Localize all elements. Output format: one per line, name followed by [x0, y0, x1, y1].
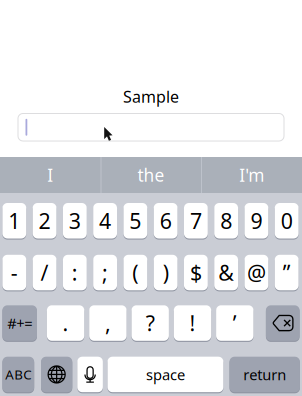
button[interactable]: )	[154, 255, 178, 290]
button[interactable]: 2	[33, 203, 57, 238]
staticText: space	[146, 365, 185, 384]
staticText: )	[163, 258, 169, 287]
button[interactable]: 1	[2, 203, 26, 238]
button[interactable]: /	[33, 255, 57, 290]
staticText: !	[189, 309, 195, 337]
staticText: ”	[283, 258, 291, 287]
button[interactable]: 0	[275, 203, 299, 238]
staticText: 9	[250, 207, 262, 235]
button[interactable]: 9	[244, 203, 268, 238]
button[interactable]: ’	[216, 305, 253, 341]
staticText: 1	[8, 207, 20, 235]
button[interactable]: return	[229, 357, 300, 392]
button[interactable]: 8	[214, 203, 238, 238]
staticText: ?	[146, 309, 155, 337]
staticText: 6	[160, 207, 172, 235]
staticText: .	[63, 309, 69, 337]
staticText: #+=	[7, 313, 32, 333]
staticText: /	[41, 258, 49, 287]
button[interactable]: ;	[93, 255, 117, 290]
staticText: 7	[190, 207, 202, 235]
button[interactable]: (	[123, 255, 147, 290]
button[interactable]: !	[174, 305, 211, 341]
button[interactable]: ”	[275, 255, 299, 290]
button[interactable]: -	[2, 255, 26, 290]
staticText: 2	[39, 207, 51, 235]
button[interactable]: 7	[184, 203, 208, 238]
staticText: -	[11, 258, 18, 287]
button[interactable]: Dictation	[77, 357, 103, 392]
staticText: ’	[233, 309, 237, 337]
button[interactable]: Delete	[266, 305, 300, 341]
button[interactable]: @	[244, 255, 268, 290]
button[interactable]: Next keyboard	[41, 357, 72, 392]
staticText: $	[190, 258, 202, 287]
staticText: Sample	[123, 86, 179, 107]
staticText: I'm	[239, 163, 264, 186]
button[interactable]: $	[184, 255, 208, 290]
button[interactable]: I	[0, 157, 101, 193]
staticText: the	[137, 163, 164, 186]
staticText: 8	[220, 207, 232, 235]
button[interactable]: the	[101, 157, 201, 193]
button[interactable]: space	[107, 357, 223, 392]
button[interactable]: 6	[154, 203, 178, 238]
button[interactable]: &	[214, 255, 238, 290]
button[interactable]: ?	[131, 305, 169, 341]
button[interactable]: 5	[123, 203, 147, 238]
button[interactable]: #+=	[2, 305, 37, 341]
staticText: ,	[105, 309, 111, 337]
staticText: ;	[102, 258, 108, 287]
button[interactable]: :	[63, 255, 87, 290]
staticText: :	[72, 258, 78, 287]
staticText: ABC	[5, 366, 31, 383]
button[interactable]: I'm	[201, 157, 302, 193]
staticText: 5	[129, 207, 141, 235]
staticText: 0	[281, 207, 293, 235]
staticText: I	[47, 163, 53, 186]
staticText: &	[218, 258, 234, 287]
button[interactable]: 3	[63, 203, 87, 238]
staticText: 3	[69, 207, 81, 235]
button[interactable]: ABC	[2, 357, 34, 392]
staticText: return	[243, 365, 286, 384]
staticText: @	[247, 258, 266, 287]
button[interactable]: .	[47, 305, 84, 341]
button[interactable]: ,	[89, 305, 127, 341]
button[interactable]: 4	[93, 203, 117, 238]
staticText: 4	[99, 207, 111, 235]
staticText: (	[132, 258, 138, 287]
